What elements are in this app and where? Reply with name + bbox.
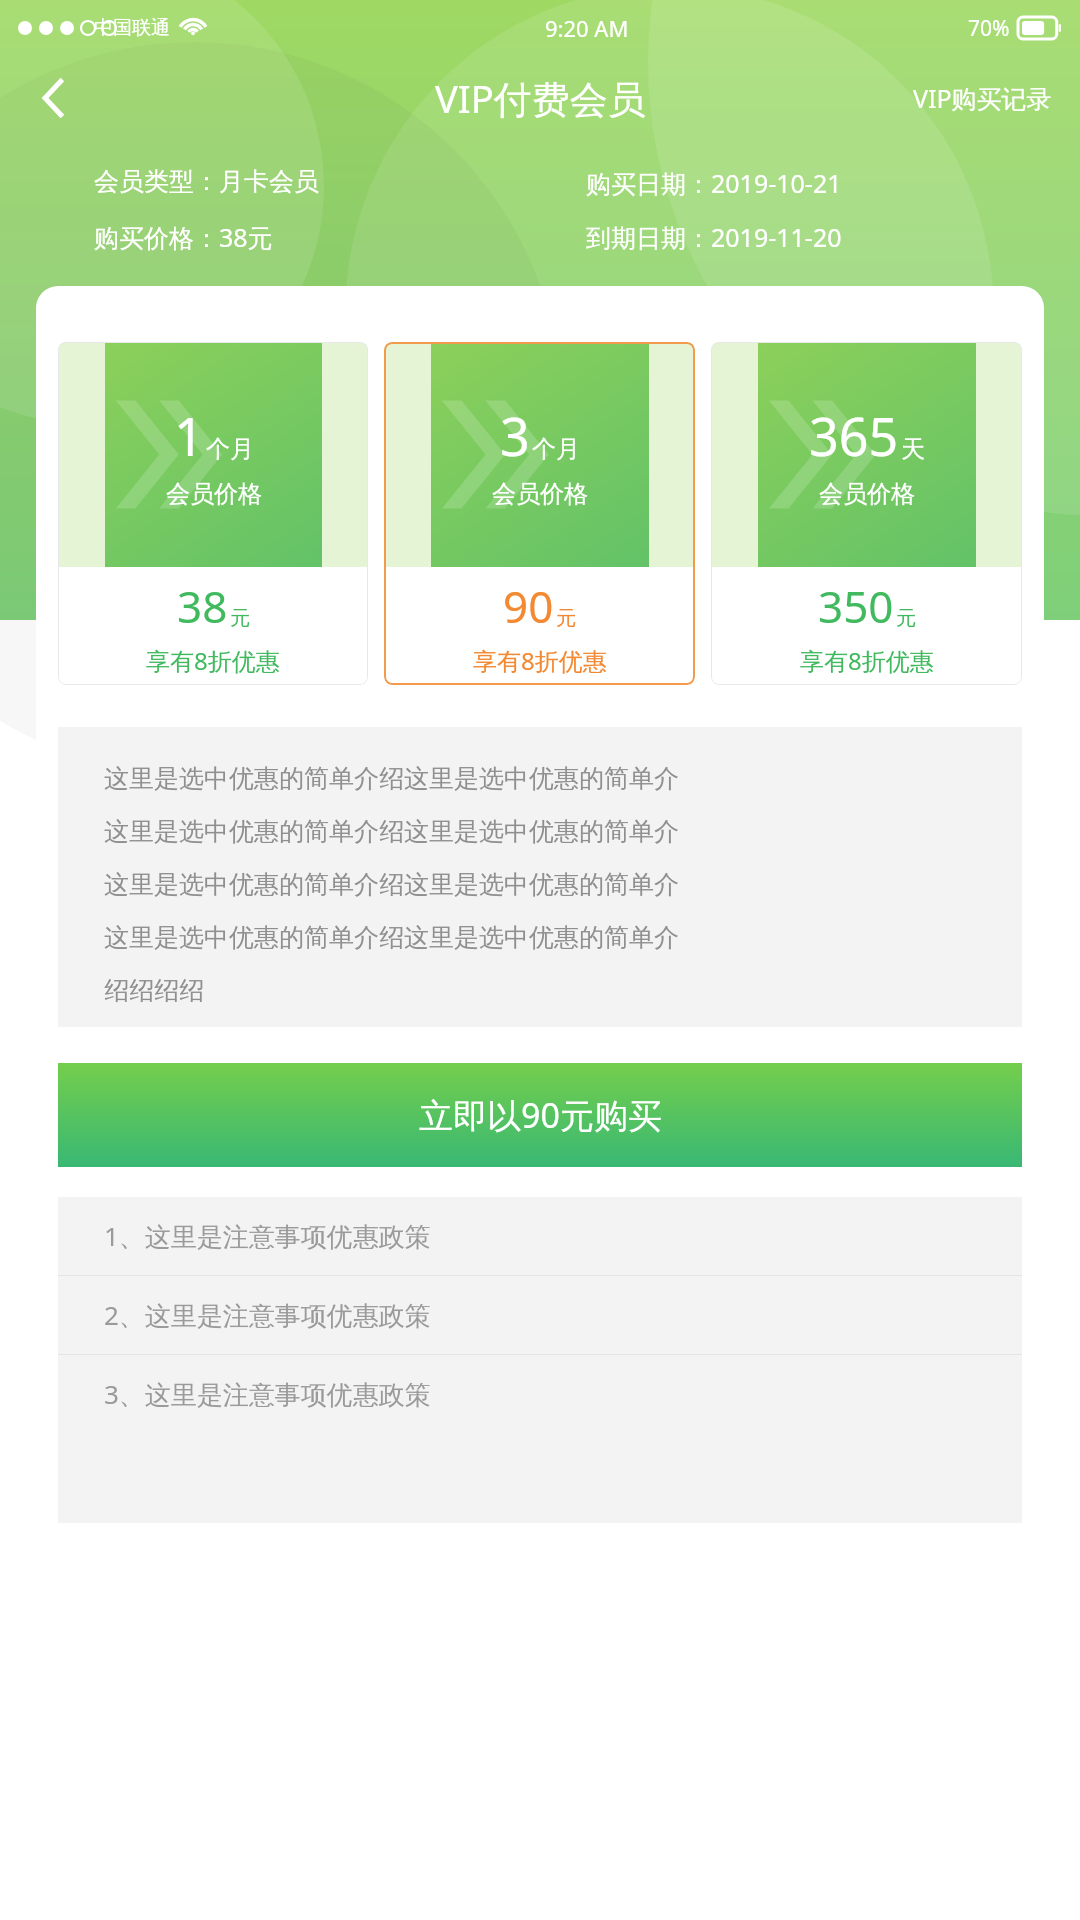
button[interactable]: 3 [384, 342, 695, 685]
staticText: 购买日期：2019-10-21 [586, 166, 842, 200]
staticText: 3 [500, 400, 530, 471]
staticText: 会员类型：月卡会员 [94, 166, 319, 197]
staticText: 会员价格 [819, 479, 915, 509]
staticText: 38 [177, 576, 228, 636]
staticText: VIP购买记录 [913, 81, 1052, 115]
button[interactable]: 365 [711, 342, 1022, 685]
staticText: 享有8折优惠 [800, 644, 934, 677]
staticText: 会员价格 [492, 479, 588, 509]
staticText: 365 [809, 400, 899, 471]
staticText: 70% [968, 14, 1010, 43]
staticText: 这里是选中优惠的简单介绍这里是选中优惠的简单介 [104, 816, 679, 847]
staticText: 1 [174, 400, 204, 471]
staticText: 9:20 AM [545, 13, 629, 43]
button[interactable]: VIP购买记录 [905, 71, 1060, 125]
staticText: 1、这里是注意事项优惠政策 [104, 1218, 431, 1254]
staticText: 90 [503, 576, 554, 636]
staticText: 这里是选中优惠的简单介绍这里是选中优惠的简单介 [104, 869, 679, 900]
staticText: 中国联通 [94, 16, 170, 40]
staticText: 2、这里是注意事项优惠政策 [104, 1297, 431, 1333]
staticText: 会员价格 [166, 479, 262, 509]
staticText: 3、这里是注意事项优惠政策 [104, 1376, 431, 1412]
staticText: 元 [556, 606, 576, 631]
staticText: 元 [896, 606, 916, 631]
staticText: 这里是选中优惠的简单介绍这里是选中优惠的简单介 [104, 763, 679, 794]
staticText: VIP付费会员 [435, 72, 646, 124]
button[interactable]: 3、这里是注意事项优惠政策 [58, 1355, 1022, 1433]
staticText: 到期日期：2019-11-20 [586, 220, 842, 254]
staticText: 这里是选中优惠的简单介绍这里是选中优惠的简单介 [104, 922, 679, 953]
staticText: 元 [230, 606, 250, 631]
staticText: 绍绍绍绍 [104, 975, 204, 1006]
staticText: 立即以90元购买 [419, 1092, 662, 1138]
staticText: 天 [901, 434, 925, 464]
button[interactable]: 立即以90元购买 [58, 1063, 1022, 1167]
staticText: 350 [818, 576, 894, 636]
button[interactable]: Back [22, 66, 86, 130]
button[interactable]: 1、这里是注意事项优惠政策 [58, 1197, 1022, 1275]
staticText: 个月 [206, 434, 254, 464]
staticText: 享有8折优惠 [146, 644, 280, 677]
staticText: 个月 [532, 434, 580, 464]
button[interactable]: 1 [58, 342, 368, 685]
staticText: 享有8折优惠 [473, 644, 607, 677]
button[interactable]: 2、这里是注意事项优惠政策 [58, 1276, 1022, 1354]
staticText: 购买价格：38元 [94, 220, 273, 254]
